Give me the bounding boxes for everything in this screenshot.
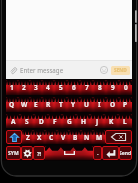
button[interactable]: Enter message	[6, 61, 132, 79]
staticText: A	[11, 117, 16, 126]
button[interactable]: M	[93, 130, 105, 144]
staticText: ?!	[37, 150, 42, 157]
button[interactable]: Send	[119, 146, 132, 160]
staticText: F	[53, 117, 57, 126]
staticText: V	[61, 133, 66, 142]
staticText: 8	[98, 83, 102, 92]
button[interactable]: 1	[6, 80, 18, 95]
staticText: W	[21, 100, 28, 109]
button[interactable]: G	[62, 114, 76, 128]
staticText: .	[97, 149, 99, 157]
staticText: 4	[46, 83, 50, 92]
staticText: J	[96, 117, 99, 126]
button[interactable]: E	[30, 97, 42, 112]
button[interactable]: 6	[67, 80, 80, 95]
button[interactable]	[45, 146, 93, 160]
button[interactable]: B	[69, 130, 81, 144]
staticText: N	[84, 133, 90, 142]
button[interactable]: V	[57, 130, 69, 144]
button[interactable]: 3	[30, 80, 42, 95]
staticText: Z	[26, 133, 30, 142]
staticText: G	[67, 117, 72, 126]
button[interactable]: 5	[54, 80, 67, 95]
staticText: O	[110, 100, 116, 109]
staticText: 2	[22, 83, 26, 92]
button[interactable]: N	[81, 130, 93, 144]
button[interactable]: X	[33, 130, 45, 144]
staticText: 1	[10, 83, 14, 92]
button[interactable]: A	[6, 114, 20, 128]
staticText: 6	[72, 83, 76, 92]
staticText: 9	[111, 83, 115, 92]
staticText: B	[73, 133, 78, 142]
staticText: Y	[71, 100, 76, 109]
button[interactable]: 9	[106, 80, 119, 95]
button[interactable]: 7	[80, 80, 93, 95]
button[interactable]: F	[48, 114, 62, 128]
staticText: 0	[124, 83, 128, 92]
staticText: T	[59, 100, 63, 109]
button[interactable]: S	[20, 114, 34, 128]
button[interactable]: L	[118, 114, 132, 128]
button[interactable]: U	[80, 97, 93, 112]
staticText: U	[84, 100, 89, 109]
button[interactable]: O	[106, 97, 119, 112]
button[interactable]: H	[76, 114, 90, 128]
staticText: SEND	[114, 67, 127, 74]
button[interactable]: C	[45, 130, 57, 144]
staticText: Send	[119, 150, 132, 157]
staticText: C	[49, 133, 54, 142]
button[interactable]: 4	[42, 80, 54, 95]
button[interactable]: Shift	[6, 130, 22, 144]
button[interactable]: R	[42, 97, 54, 112]
button[interactable]: Q	[6, 97, 18, 112]
button[interactable]: D	[34, 114, 48, 128]
button[interactable]: K	[104, 114, 118, 128]
button[interactable]: T	[54, 97, 67, 112]
button[interactable]: SYM	[6, 146, 21, 160]
staticText: S	[25, 117, 29, 126]
staticText: 7	[85, 83, 89, 92]
button[interactable]: 8	[93, 80, 106, 95]
button[interactable]: Z	[22, 130, 33, 144]
button[interactable]: 0	[119, 80, 132, 95]
staticText: Q	[9, 100, 15, 109]
staticText: 3	[34, 83, 38, 92]
staticText: I	[98, 100, 101, 109]
staticText: L	[123, 117, 127, 126]
button[interactable]: .	[93, 146, 102, 160]
button[interactable]: Y	[67, 97, 80, 112]
staticText: E	[34, 100, 38, 109]
staticText: 5	[59, 83, 63, 92]
button[interactable]: Enter	[102, 146, 119, 160]
button[interactable]: ?!	[33, 146, 45, 160]
button[interactable]: SEND	[111, 66, 130, 75]
button[interactable]: W	[18, 97, 30, 112]
staticText: D	[39, 117, 44, 126]
button[interactable]: J	[90, 114, 104, 128]
button[interactable]: 2	[18, 80, 30, 95]
staticText: P	[123, 100, 128, 109]
button[interactable]: Settings	[21, 146, 33, 160]
staticText: SYM	[8, 150, 19, 157]
button[interactable]: P	[119, 97, 132, 112]
staticText: R	[46, 100, 51, 109]
button[interactable]: Backspace	[105, 130, 132, 144]
staticText: X	[37, 133, 42, 142]
button[interactable]: I	[93, 97, 106, 112]
staticText: Enter message	[20, 66, 64, 74]
staticText: K	[109, 117, 114, 126]
staticText: M	[96, 133, 103, 142]
staticText: H	[81, 117, 86, 126]
